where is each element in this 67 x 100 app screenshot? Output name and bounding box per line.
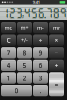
button[interactable]: 0 (1, 85, 32, 96)
button[interactable]: 6 (33, 60, 48, 71)
staticText: m- (37, 24, 44, 31)
staticText: 4 (6, 61, 10, 70)
button[interactable]: 3 (33, 72, 48, 84)
staticText: . (39, 86, 41, 95)
staticText: 7 (6, 48, 10, 57)
button[interactable]: m- (33, 22, 48, 33)
staticText: 9:41 (33, 0, 40, 5)
button[interactable]: 1 (1, 72, 16, 84)
staticText: m+ (20, 24, 28, 31)
button[interactable]: ÷ (33, 35, 48, 46)
button[interactable]: mc (1, 22, 16, 33)
button[interactable]: 7 (1, 47, 16, 58)
button[interactable]: . (33, 85, 48, 96)
staticText: mr (53, 24, 60, 31)
staticText: 2 (22, 74, 26, 82)
staticText: +/- (21, 37, 28, 44)
staticText: 6 (38, 61, 42, 70)
staticText: ÷ (38, 36, 42, 45)
staticText: × (54, 36, 58, 45)
button[interactable]: − (49, 47, 64, 58)
button[interactable]: m+ (17, 22, 32, 33)
button[interactable]: 8 (17, 47, 32, 58)
button[interactable]: +/- (17, 35, 32, 46)
staticText: 3 (38, 74, 42, 82)
staticText: 0 (14, 86, 18, 95)
button[interactable]: 4 (1, 60, 16, 71)
staticText: + (54, 61, 58, 70)
staticText: 1 (6, 74, 10, 82)
button[interactable]: mr (49, 22, 64, 33)
button[interactable]: × (49, 35, 64, 46)
staticText: = (54, 80, 58, 89)
staticText: C (6, 36, 10, 45)
staticText: 5 (22, 61, 26, 70)
button[interactable]: 5 (17, 60, 32, 71)
button[interactable]: 9 (33, 47, 48, 58)
staticText: 8 (22, 48, 26, 57)
staticText: 123,456.789 (1, 7, 66, 19)
button[interactable]: = (49, 72, 64, 96)
button[interactable]: + (49, 60, 64, 71)
button[interactable]: 2 (17, 72, 32, 84)
staticText: 9 (38, 48, 42, 57)
staticText: − (54, 48, 58, 57)
button[interactable]: C (1, 35, 16, 46)
staticText: mc (4, 24, 12, 31)
